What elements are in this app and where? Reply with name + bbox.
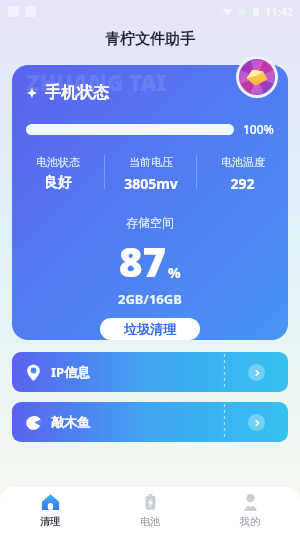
button[interactable]: 奖励 xyxy=(236,56,278,98)
staticText: 垃圾清理 xyxy=(124,321,176,337)
staticText: 100% xyxy=(243,121,274,137)
button[interactable]: 敲木鱼 xyxy=(12,402,288,442)
button[interactable]: 垃圾清理 xyxy=(100,318,200,340)
staticText: 87 xyxy=(119,234,166,288)
staticText: 清理 xyxy=(40,515,60,528)
staticText: 良好 xyxy=(44,174,72,192)
staticText: 青柠文件助手 xyxy=(105,30,195,49)
staticText: 当前电压 xyxy=(129,155,173,169)
staticText: ZHUANG TAI xyxy=(26,67,167,97)
staticText: 电池状态 xyxy=(36,155,80,169)
button[interactable]: 清理 xyxy=(0,487,100,533)
staticText: 292 xyxy=(230,174,255,193)
staticText: 11:42 xyxy=(265,4,294,19)
staticText: 电池温度 xyxy=(221,155,265,169)
staticText: 手机状态 xyxy=(45,83,109,103)
staticText: 电池 xyxy=(140,515,160,528)
staticText: 敲木鱼 xyxy=(51,414,90,430)
button[interactable]: 电池 xyxy=(100,487,200,533)
staticText: 我的 xyxy=(240,515,260,528)
button[interactable]: IP信息 xyxy=(12,352,288,392)
staticText: 存储空间 xyxy=(126,215,174,230)
staticText: % xyxy=(168,263,181,282)
staticText: 2GB/16GB xyxy=(118,290,182,308)
staticText: 3805mv xyxy=(124,174,178,193)
button[interactable]: 我的 xyxy=(200,487,300,533)
staticText: IP信息 xyxy=(51,363,91,381)
